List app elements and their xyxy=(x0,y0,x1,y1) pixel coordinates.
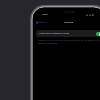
staticText: 10:40 xyxy=(42,13,48,16)
button[interactable]: Privacy xyxy=(36,21,47,24)
staticText: Allow Apps to Request to Track xyxy=(39,32,70,35)
staticText: Privacy xyxy=(39,21,47,24)
staticText: Tracking xyxy=(64,21,74,24)
button[interactable]: Allow Apps to Request to Track xyxy=(36,30,100,37)
staticText: Allow apps to ask to track your activity… xyxy=(38,39,100,45)
button[interactable]: Allow tracking toggle xyxy=(96,32,100,36)
